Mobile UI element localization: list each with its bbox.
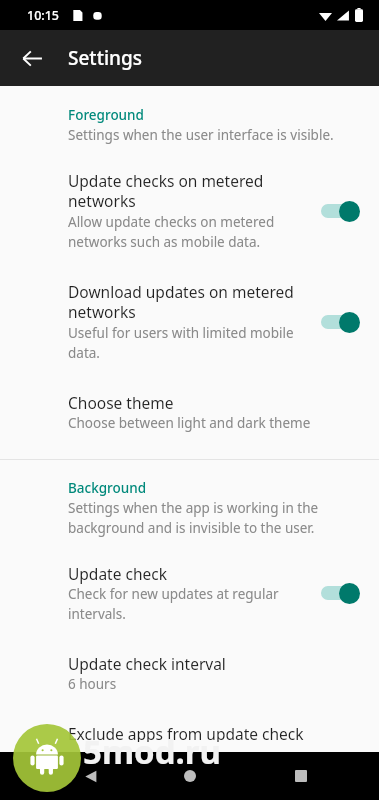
staticText: Update check interval	[68, 653, 226, 674]
button[interactable]: Back	[8, 34, 56, 82]
button[interactable]: Download updates on metered networks	[0, 271, 379, 372]
staticText: Allow update checks on metered networks …	[68, 213, 309, 251]
staticText: Download updates on metered networks	[68, 281, 309, 323]
staticText: Update checks on metered networks	[68, 170, 309, 212]
staticText: Settings when the app is working in the …	[68, 499, 359, 537]
staticText: Exclude apps from update check	[68, 723, 304, 742]
staticText: Settings	[68, 45, 142, 71]
staticText: Choose between light and dark theme	[68, 414, 311, 432]
staticText: Useful for users with limited mobile dat…	[68, 324, 309, 362]
button[interactable]: Back	[72, 758, 108, 794]
staticText: 6 hours	[68, 675, 117, 693]
button[interactable]: Choose theme	[0, 382, 379, 442]
staticText: Foreground	[68, 106, 144, 124]
staticText: Choose theme	[68, 392, 174, 413]
staticText: Update check	[68, 563, 167, 584]
staticText: 10:15	[27, 7, 60, 24]
staticText: Settings when the user interface is visi…	[68, 126, 334, 144]
button[interactable]: Update check	[0, 553, 379, 633]
button[interactable]: Recents	[283, 758, 319, 794]
button[interactable]: Update checks on metered networks	[0, 160, 379, 261]
staticText: 5mod.ru	[83, 729, 222, 774]
button[interactable]: Home	[172, 758, 208, 794]
button[interactable]: Exclude apps from update check	[0, 713, 379, 752]
button[interactable]: Update check interval	[0, 643, 379, 703]
staticText: Background	[68, 479, 147, 497]
staticText: Check for new updates at regular interva…	[68, 585, 309, 623]
